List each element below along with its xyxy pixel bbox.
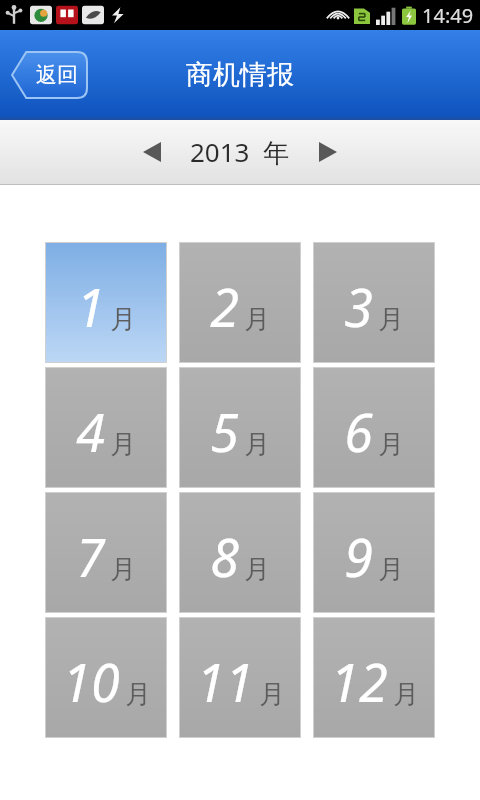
button[interactable]: 1 [46, 243, 166, 362]
staticText: 月 [110, 428, 136, 461]
button[interactable]: 10 [46, 618, 166, 737]
staticText: 月 [110, 553, 136, 586]
staticText: 月 [125, 678, 151, 711]
staticText: 月 [244, 303, 270, 336]
staticText: 月 [244, 428, 270, 461]
staticText: 8 [210, 521, 239, 592]
button[interactable]: 2 [180, 243, 300, 362]
staticText: 10 [62, 646, 120, 717]
button[interactable]: 上一年 [130, 130, 174, 174]
staticText: 月 [378, 553, 404, 586]
staticText: 9 [344, 521, 373, 592]
button[interactable]: 9 [314, 493, 434, 612]
staticText: 3 [344, 271, 373, 342]
staticText: 月 [393, 678, 419, 711]
button[interactable]: 7 [46, 493, 166, 612]
staticText: 1 [76, 271, 105, 342]
staticText: 月 [110, 303, 136, 336]
staticText: 月 [244, 553, 270, 586]
button[interactable]: 下一年 [306, 130, 350, 174]
staticText: 6 [344, 396, 373, 467]
button[interactable]: 11 [180, 618, 300, 737]
staticText: 月 [259, 678, 285, 711]
staticText: 2013 年 [190, 134, 290, 170]
staticText: 12 [330, 646, 388, 717]
staticText: 2 [210, 271, 239, 342]
button[interactable]: 6 [314, 368, 434, 487]
button[interactable]: 12 [314, 618, 434, 737]
staticText: 4 [76, 396, 105, 467]
button[interactable]: 3 [314, 243, 434, 362]
button[interactable]: 5 [180, 368, 300, 487]
button[interactable]: 8 [180, 493, 300, 612]
button[interactable]: 返回 [12, 50, 87, 100]
staticText: 月 [378, 428, 404, 461]
staticText: 返回 [36, 62, 78, 88]
staticText: 7 [76, 521, 105, 592]
staticText: 商机情报 [186, 58, 294, 92]
staticText: 11 [196, 646, 254, 717]
staticText: 14:49 [422, 2, 474, 29]
button[interactable]: 4 [46, 368, 166, 487]
staticText: 月 [378, 303, 404, 336]
staticText: 5 [210, 396, 239, 467]
